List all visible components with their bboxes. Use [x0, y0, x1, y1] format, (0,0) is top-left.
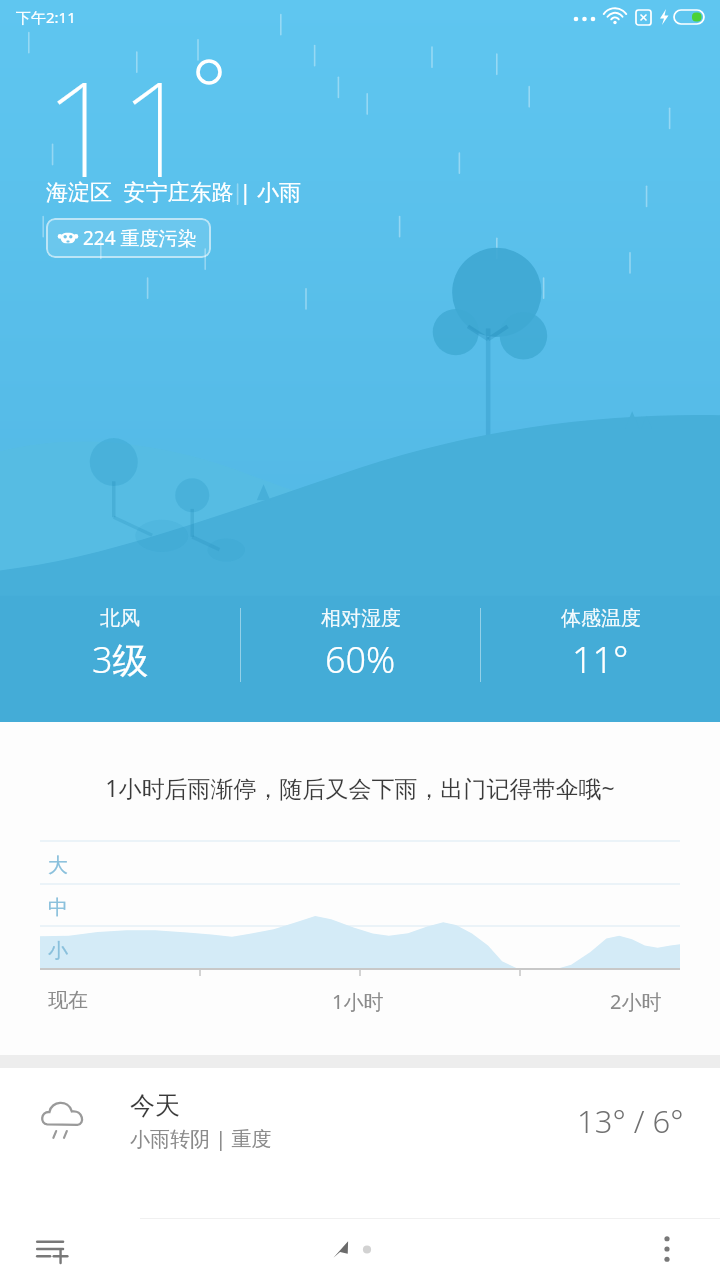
- staticText: 11°: [572, 635, 629, 684]
- button[interactable]: Current location: [312, 1223, 408, 1275]
- button[interactable]: Add city: [22, 1218, 84, 1280]
- staticText: 小: [48, 938, 68, 963]
- staticText: 1小时后雨渐停，随后又会下雨，出门记得带伞哦~: [12, 772, 708, 803]
- staticText: 北风: [100, 606, 140, 631]
- staticText: 中: [48, 895, 68, 920]
- staticText: 现在: [48, 988, 88, 1013]
- staticText: 下午2:11: [16, 7, 76, 27]
- staticText: 大: [48, 853, 68, 878]
- staticText: 1小时: [332, 988, 384, 1015]
- button[interactable]: 相对湿度: [241, 598, 480, 684]
- staticText: 60%: [325, 635, 396, 684]
- staticText: 2小时: [610, 988, 662, 1015]
- staticText: 13° / 6°: [577, 1100, 684, 1142]
- staticText: 224 重度污染: [83, 225, 197, 251]
- button[interactable]: More options: [636, 1218, 698, 1280]
- staticText: 11: [44, 36, 195, 216]
- button[interactable]: 今天: [0, 1068, 720, 1174]
- button[interactable]: 北风: [0, 598, 240, 684]
- staticText: 今天: [130, 1090, 180, 1121]
- staticText: 海淀区 安宁庄东路 | 小雨: [46, 176, 302, 206]
- button[interactable]: 224 重度污染: [46, 218, 211, 258]
- staticText: 体感温度: [561, 606, 641, 631]
- staticText: 相对湿度: [321, 606, 401, 631]
- staticText: 小雨转阴 | 重度: [130, 1125, 272, 1152]
- staticText: 3级: [92, 635, 149, 684]
- button[interactable]: 体感温度: [481, 598, 720, 684]
